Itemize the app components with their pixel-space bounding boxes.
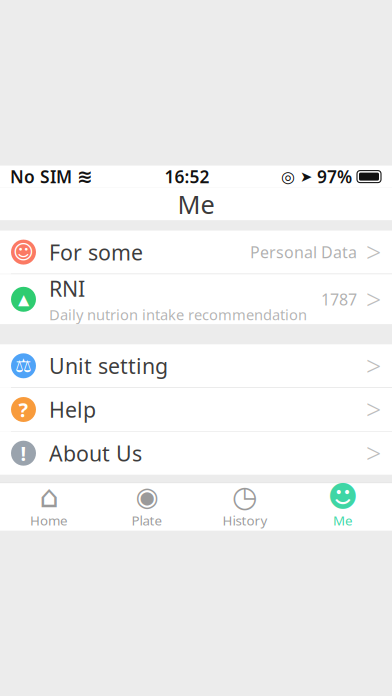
staticText: Daily nutrion intake recommendation — [49, 305, 307, 324]
button[interactable]: ⌂ — [0, 483, 98, 530]
staticText: Me — [177, 187, 214, 221]
button[interactable]: ☺ — [0, 231, 392, 274]
staticText: > — [366, 234, 381, 270]
staticText: 1787 — [321, 289, 357, 310]
staticText: ◉ — [135, 481, 158, 512]
button[interactable]: ◉ — [98, 483, 196, 530]
staticText: 16:52 — [164, 165, 209, 188]
button[interactable]: ? — [0, 388, 392, 431]
staticText: Me — [333, 511, 353, 529]
staticText: ◎ — [281, 167, 295, 186]
staticText: > — [366, 392, 381, 427]
staticText: Unit setting — [49, 352, 168, 380]
staticText: ⚖ — [15, 355, 32, 376]
staticText: For some — [49, 238, 143, 266]
button[interactable]: ! — [0, 432, 392, 475]
button[interactable]: ⚖ — [0, 344, 392, 387]
button[interactable]: ◷ — [196, 483, 294, 530]
staticText: ➤ — [300, 168, 312, 185]
staticText: > — [366, 435, 381, 471]
staticText: ≋ — [77, 166, 93, 187]
staticText: ☺ — [13, 241, 34, 263]
staticText: ⌂ — [39, 479, 58, 514]
staticText: Plate — [131, 511, 162, 529]
button[interactable]: ▲ — [0, 274, 392, 324]
staticText: ? — [18, 396, 28, 423]
staticText: Personal Data — [250, 241, 357, 263]
button[interactable]: ☻ — [294, 483, 392, 530]
staticText: Home — [30, 511, 68, 529]
staticText: About Us — [49, 439, 142, 467]
staticText: 97% — [317, 165, 352, 188]
staticText: Help — [49, 395, 96, 424]
staticText: > — [366, 348, 381, 383]
staticText: History — [222, 511, 267, 529]
staticText: No SIM — [10, 165, 72, 188]
staticText: ▲ — [18, 291, 29, 308]
staticText: ◷ — [232, 480, 258, 513]
staticText: RNI — [49, 274, 85, 303]
staticText: ! — [20, 440, 26, 466]
staticText: > — [366, 282, 381, 317]
staticText: ☻ — [327, 480, 358, 513]
